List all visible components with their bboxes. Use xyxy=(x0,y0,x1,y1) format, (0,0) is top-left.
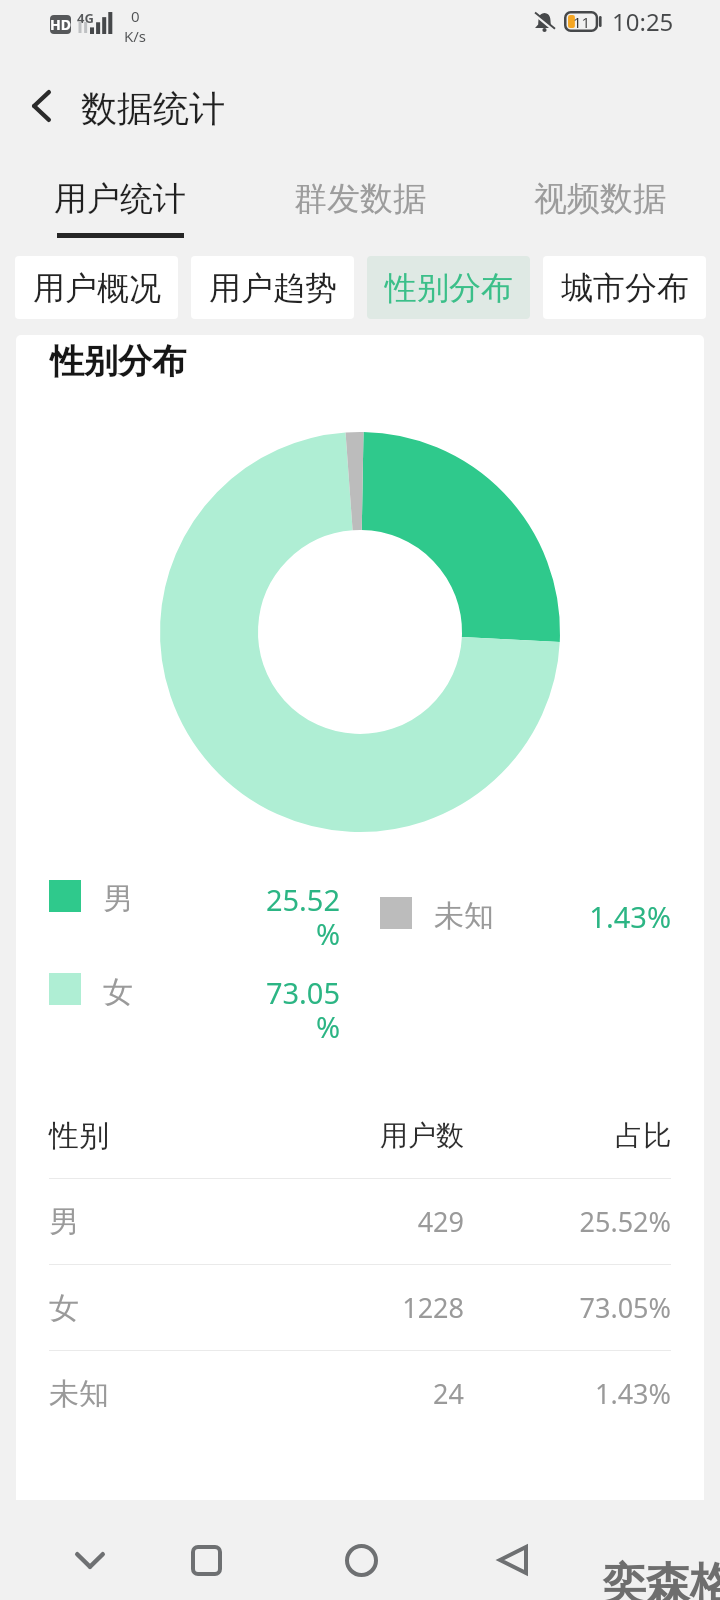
staticText: 1.43% xyxy=(587,897,671,936)
staticText: 数据统计 xyxy=(81,86,225,131)
button[interactable]: Hide keyboard xyxy=(50,1510,130,1600)
staticText: 视频数据 xyxy=(534,178,666,220)
staticText: 男 xyxy=(49,1203,257,1241)
staticText: 性别分布 xyxy=(50,340,186,383)
button[interactable]: 群发数据 xyxy=(240,148,480,238)
staticText: 用户数 xyxy=(257,1118,464,1153)
staticText: 女 xyxy=(103,973,133,1011)
staticText: 1228 xyxy=(257,1289,464,1326)
staticText: 429 xyxy=(257,1203,464,1240)
staticText: 10:25 xyxy=(612,5,674,38)
staticText: 25.52% xyxy=(256,880,340,953)
staticText: 性别 xyxy=(49,1117,257,1155)
staticText: 25.52% xyxy=(464,1203,671,1240)
staticText: 占比 xyxy=(464,1118,671,1153)
staticText: 用户趋势 xyxy=(209,268,337,308)
staticText: K/s xyxy=(124,26,147,46)
button[interactable]: 用户概况 xyxy=(15,256,178,319)
staticText: 用户概况 xyxy=(33,268,161,308)
staticText: 73.05% xyxy=(256,973,340,1046)
staticText: 0 xyxy=(131,6,140,26)
button[interactable]: Home xyxy=(321,1510,401,1600)
staticText: 女 xyxy=(49,1289,257,1327)
staticText: 城市分布 xyxy=(561,268,689,308)
staticText: 1.43% xyxy=(464,1375,671,1412)
button[interactable]: 城市分布 xyxy=(543,256,706,319)
staticText: 11 xyxy=(573,12,591,32)
staticText: 73.05% xyxy=(464,1289,671,1326)
staticText: 性别分布 xyxy=(385,268,513,308)
staticText: 奕森格 xyxy=(602,1557,720,1600)
button[interactable]: 性别分布 xyxy=(367,256,530,319)
staticText: 24 xyxy=(257,1375,464,1412)
button[interactable]: 用户趋势 xyxy=(191,256,354,319)
staticText: 群发数据 xyxy=(294,178,426,220)
button[interactable]: Recent apps xyxy=(166,1510,246,1600)
staticText: 未知 xyxy=(434,897,494,935)
staticText: 男 xyxy=(103,880,133,918)
button[interactable]: 视频数据 xyxy=(480,148,720,238)
button[interactable]: Back xyxy=(473,1510,553,1600)
button[interactable]: 用户统计 xyxy=(0,148,240,238)
staticText: 用户统计 xyxy=(54,178,186,220)
button[interactable]: Back xyxy=(10,75,72,137)
staticText: HD xyxy=(50,15,71,34)
staticText: 未知 xyxy=(49,1375,257,1413)
staticText: 4G xyxy=(77,9,94,27)
